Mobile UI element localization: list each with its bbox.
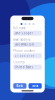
staticText: Full name — [13, 26, 26, 30]
staticText: jane@mail.com — [15, 43, 34, 46]
staticText: Phone number — [13, 49, 35, 53]
staticText: Back — [16, 84, 23, 88]
staticText: Email address — [13, 38, 30, 41]
staticText: Jane Cooper — [15, 31, 33, 35]
staticText: Next — [32, 84, 38, 88]
staticText: Country — [13, 60, 24, 64]
button[interactable]: Back — [13, 83, 26, 89]
staticText: United States — [15, 65, 33, 69]
button[interactable]: Next — [28, 83, 42, 89]
staticText: +1 555 0199 — [15, 54, 35, 58]
